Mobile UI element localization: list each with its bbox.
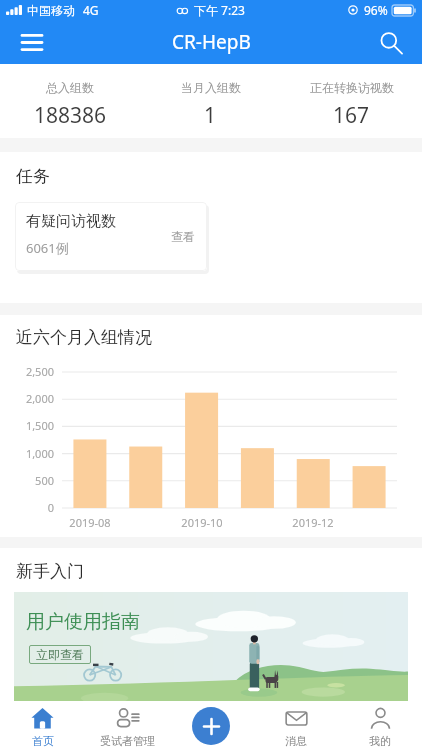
button[interactable]: 有疑问访视数	[15, 202, 207, 271]
staticText: 1,500	[8, 418, 54, 433]
staticText: 1,000	[8, 446, 54, 461]
staticText: 下午 7:23	[194, 2, 245, 18]
staticText: 188386	[34, 101, 107, 130]
staticText: 96%	[364, 2, 388, 18]
staticText: 1	[204, 101, 217, 130]
staticText: 2,000	[8, 391, 54, 406]
staticText: 有疑问访视数	[26, 212, 116, 231]
staticText: 受试者管理	[100, 734, 155, 748]
staticText: CR-HepB	[172, 29, 251, 55]
staticText: 0	[8, 500, 54, 515]
button[interactable]: 当月入组数	[140, 64, 281, 138]
staticText: 2019-10	[174, 515, 230, 530]
button[interactable]: 消息	[254, 701, 338, 750]
button[interactable]: 我的	[338, 701, 422, 750]
staticText: 当月入组数	[181, 80, 241, 95]
staticText: 用户使用指南	[26, 610, 140, 634]
staticText: 2,500	[8, 364, 54, 379]
button[interactable]: 总入组数	[0, 64, 140, 138]
staticText: 167	[333, 101, 370, 130]
button[interactable]: Menu	[13, 23, 51, 61]
button[interactable]: Search	[371, 23, 409, 61]
staticText: 新手入门	[16, 561, 84, 582]
button[interactable]: 正在转换访视数	[281, 64, 422, 138]
staticText: 消息	[285, 734, 307, 748]
staticText: 立即查看	[36, 647, 84, 662]
button[interactable]: 立即查看	[36, 647, 84, 662]
staticText: 2019-08	[62, 515, 118, 530]
button[interactable]: 用户使用指南	[14, 592, 408, 701]
staticText: 首页	[32, 734, 54, 748]
staticText: 4G	[83, 2, 99, 18]
staticText: 500	[8, 473, 54, 488]
button[interactable]: 首页	[0, 701, 85, 750]
staticText: 正在转换访视数	[310, 80, 394, 95]
staticText: 查看	[171, 229, 195, 244]
staticText: 6061例	[26, 239, 69, 257]
staticText: 任务	[16, 166, 50, 187]
staticText: 总入组数	[46, 80, 94, 95]
button[interactable]: Add	[192, 707, 230, 745]
staticText: 2019-12	[285, 515, 341, 530]
staticText: 近六个月入组情况	[16, 327, 152, 348]
staticText: 我的	[369, 734, 391, 748]
staticText: 中国移动	[27, 3, 75, 18]
button[interactable]: 受试者管理	[85, 701, 170, 750]
